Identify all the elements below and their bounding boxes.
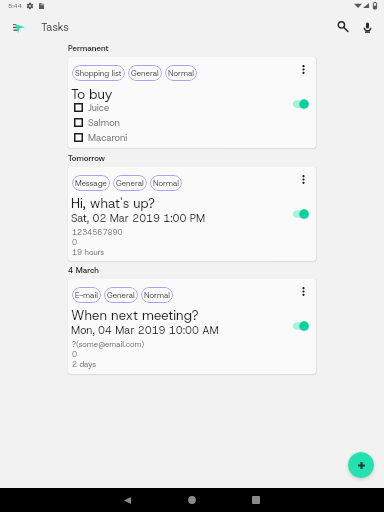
button[interactable]: Shopping list xyxy=(72,65,125,81)
staticText: Juice xyxy=(88,101,110,114)
staticText: 0 xyxy=(72,237,78,247)
button[interactable]: Macaroni xyxy=(74,130,194,145)
button[interactable]: Normal xyxy=(150,175,182,191)
staticText: 1234567890 xyxy=(72,227,123,237)
staticText: Hi, what's up? xyxy=(71,195,155,213)
staticText: When next meeting? xyxy=(71,307,199,325)
staticText: General xyxy=(131,68,159,78)
staticText: Macaroni xyxy=(88,131,128,144)
staticText: General xyxy=(107,290,135,300)
button[interactable]: E-mail xyxy=(68,279,316,374)
staticText: Salmon xyxy=(88,116,120,129)
button[interactable]: App logo xyxy=(7,16,30,39)
staticText: Tomorrow xyxy=(68,153,106,164)
staticText: 0 xyxy=(72,349,78,359)
button[interactable]: Message xyxy=(68,167,316,261)
staticText: General xyxy=(116,178,144,188)
staticText: Normal xyxy=(168,68,194,78)
button[interactable]: General xyxy=(113,175,147,191)
staticText: Message xyxy=(75,178,107,188)
staticText: Shopping list xyxy=(75,68,122,78)
staticText: 2 days xyxy=(72,359,97,369)
button[interactable]: Home xyxy=(180,488,204,512)
staticText: Normal xyxy=(153,178,179,188)
button[interactable]: Juice xyxy=(74,100,194,115)
button[interactable]: Search xyxy=(331,15,354,38)
button[interactable]: Message xyxy=(72,175,110,191)
button[interactable]: Salmon xyxy=(74,115,194,130)
staticText: 5:44 xyxy=(8,2,22,11)
staticText: Normal xyxy=(144,290,170,300)
staticText: ?(some@email.com) xyxy=(72,339,145,349)
staticText: Mon, 04 Mar 2019 10:00 AM xyxy=(71,323,219,337)
staticText: 4 March xyxy=(68,265,99,276)
button[interactable]: Toggle task xyxy=(289,95,313,113)
button[interactable]: More options xyxy=(295,171,311,187)
button[interactable]: More options xyxy=(295,283,311,299)
staticText: Permanent xyxy=(68,43,109,54)
staticText: Tasks xyxy=(41,20,69,35)
button[interactable]: Normal xyxy=(141,287,173,303)
staticText: Sat, 02 Mar 2019 1:00 PM xyxy=(71,211,206,225)
button[interactable]: Add task xyxy=(348,452,374,478)
button[interactable]: General xyxy=(104,287,138,303)
staticText: E-mail xyxy=(75,290,98,300)
button[interactable]: Voice search xyxy=(356,16,379,39)
button[interactable]: More options xyxy=(295,61,311,77)
button[interactable]: E-mail xyxy=(72,287,101,303)
button[interactable]: Back xyxy=(115,488,139,512)
staticText: To buy xyxy=(71,85,113,103)
button[interactable]: Toggle task xyxy=(289,317,313,335)
button[interactable]: Recent apps xyxy=(244,488,268,512)
button[interactable]: General xyxy=(128,65,162,81)
button[interactable]: Normal xyxy=(165,65,197,81)
staticText: 19 hours xyxy=(72,247,105,257)
button[interactable]: Toggle task xyxy=(289,205,313,223)
button[interactable]: Shopping list xyxy=(68,57,316,148)
